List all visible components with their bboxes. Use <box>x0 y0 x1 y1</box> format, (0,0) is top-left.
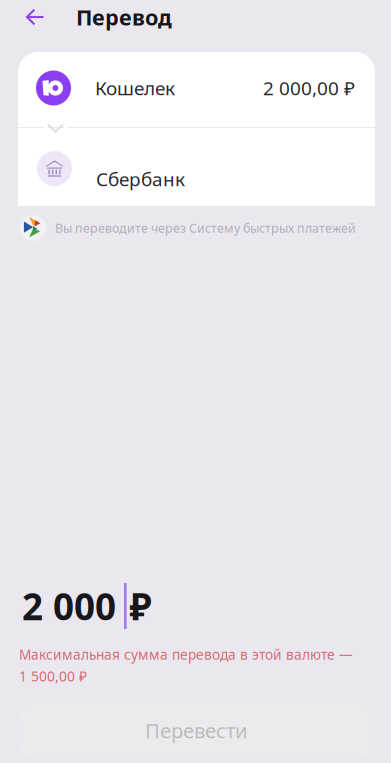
button[interactable]: Перевести <box>18 703 375 758</box>
staticText: Максимальная сумма перевода в этой валют… <box>19 645 353 664</box>
staticText: 1 500,00 ₽ <box>19 667 87 685</box>
staticText: ₽ <box>130 581 152 631</box>
staticText: Перевести <box>145 717 248 744</box>
button[interactable]: Back <box>14 0 56 37</box>
staticText: 2 000,00 ₽ <box>263 75 355 101</box>
button[interactable]: Кошелек <box>18 52 375 124</box>
staticText: Кошелек <box>95 75 175 101</box>
staticText: 2 000 <box>22 581 116 631</box>
staticText: Перевод <box>76 2 172 32</box>
staticText: Сбербанк <box>96 166 185 192</box>
staticText: Вы переводите через Систему быстрых плат… <box>55 220 356 236</box>
button[interactable]: Сбербанк <box>18 128 375 206</box>
